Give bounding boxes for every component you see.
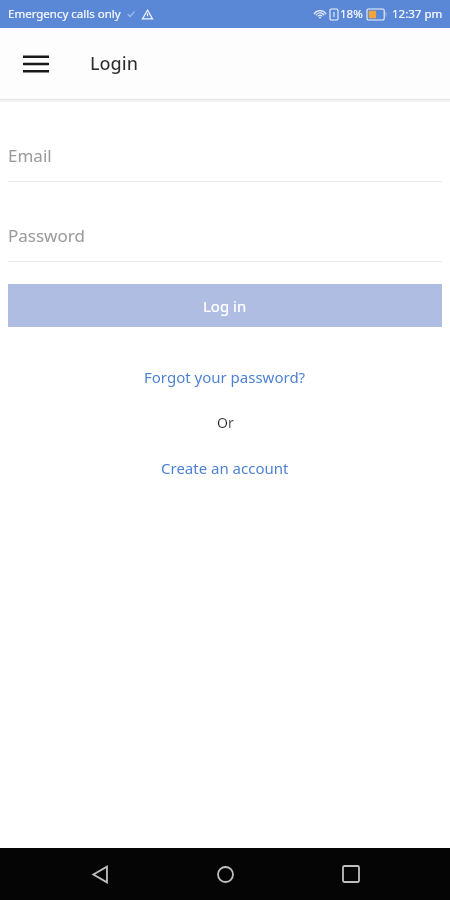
staticText: Emergency calls only <box>8 6 121 22</box>
button[interactable]: Forgot your password? <box>132 363 318 391</box>
button[interactable]: Open navigation menu <box>14 42 58 86</box>
staticText: Login <box>90 51 138 76</box>
button[interactable]: Home <box>199 848 251 900</box>
staticText: Log in <box>203 296 247 316</box>
button[interactable]: Email <box>8 142 442 182</box>
staticText: 12:37 pm <box>392 6 443 22</box>
staticText: Forgot your password? <box>144 367 306 387</box>
staticText: Or <box>217 413 234 432</box>
button[interactable]: Create an account <box>149 454 301 482</box>
staticText: Create an account <box>161 458 289 478</box>
staticText: Email <box>8 144 52 167</box>
button[interactable]: Password <box>8 222 442 262</box>
staticText: Password <box>8 224 85 247</box>
button[interactable]: Log in <box>8 284 442 327</box>
button[interactable]: Recent apps <box>325 848 377 900</box>
staticText: 18% <box>340 6 363 22</box>
button[interactable]: Back <box>74 848 126 900</box>
